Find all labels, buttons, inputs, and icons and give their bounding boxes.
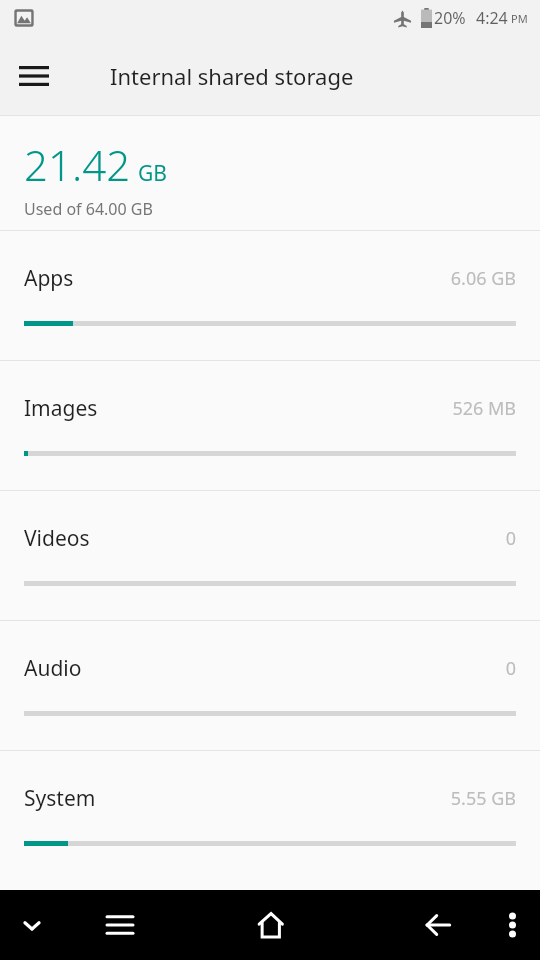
- staticText: PM: [511, 11, 528, 26]
- staticText: GB: [138, 159, 167, 188]
- button[interactable]: Open navigation menu: [10, 52, 58, 100]
- staticText: 21.42: [24, 136, 131, 193]
- button[interactable]: Audio: [0, 621, 540, 750]
- staticText: 0: [505, 526, 516, 551]
- staticText: Used of 64.00 GB: [24, 198, 153, 220]
- staticText: 20%: [434, 7, 466, 29]
- button[interactable]: System: [0, 751, 540, 880]
- button[interactable]: Hide keyboard: [8, 901, 56, 949]
- staticText: Images: [24, 394, 452, 423]
- button[interactable]: Recent apps: [96, 901, 144, 949]
- staticText: 0: [505, 656, 516, 681]
- staticText: 6.06 GB: [450, 266, 516, 291]
- button[interactable]: Back: [414, 901, 462, 949]
- staticText: 4:24: [476, 7, 508, 29]
- button[interactable]: Videos: [0, 491, 540, 620]
- staticText: 526 MB: [452, 396, 516, 421]
- staticText: Apps: [24, 264, 450, 293]
- staticText: Videos: [24, 524, 505, 553]
- button[interactable]: Apps: [0, 231, 540, 360]
- staticText: Audio: [24, 654, 505, 683]
- staticText: 5.55 GB: [450, 786, 516, 811]
- button[interactable]: More options: [489, 902, 535, 948]
- button[interactable]: Home: [244, 899, 296, 951]
- staticText: System: [24, 784, 450, 813]
- staticText: Internal shared storage: [110, 61, 354, 91]
- button[interactable]: Images: [0, 361, 540, 490]
